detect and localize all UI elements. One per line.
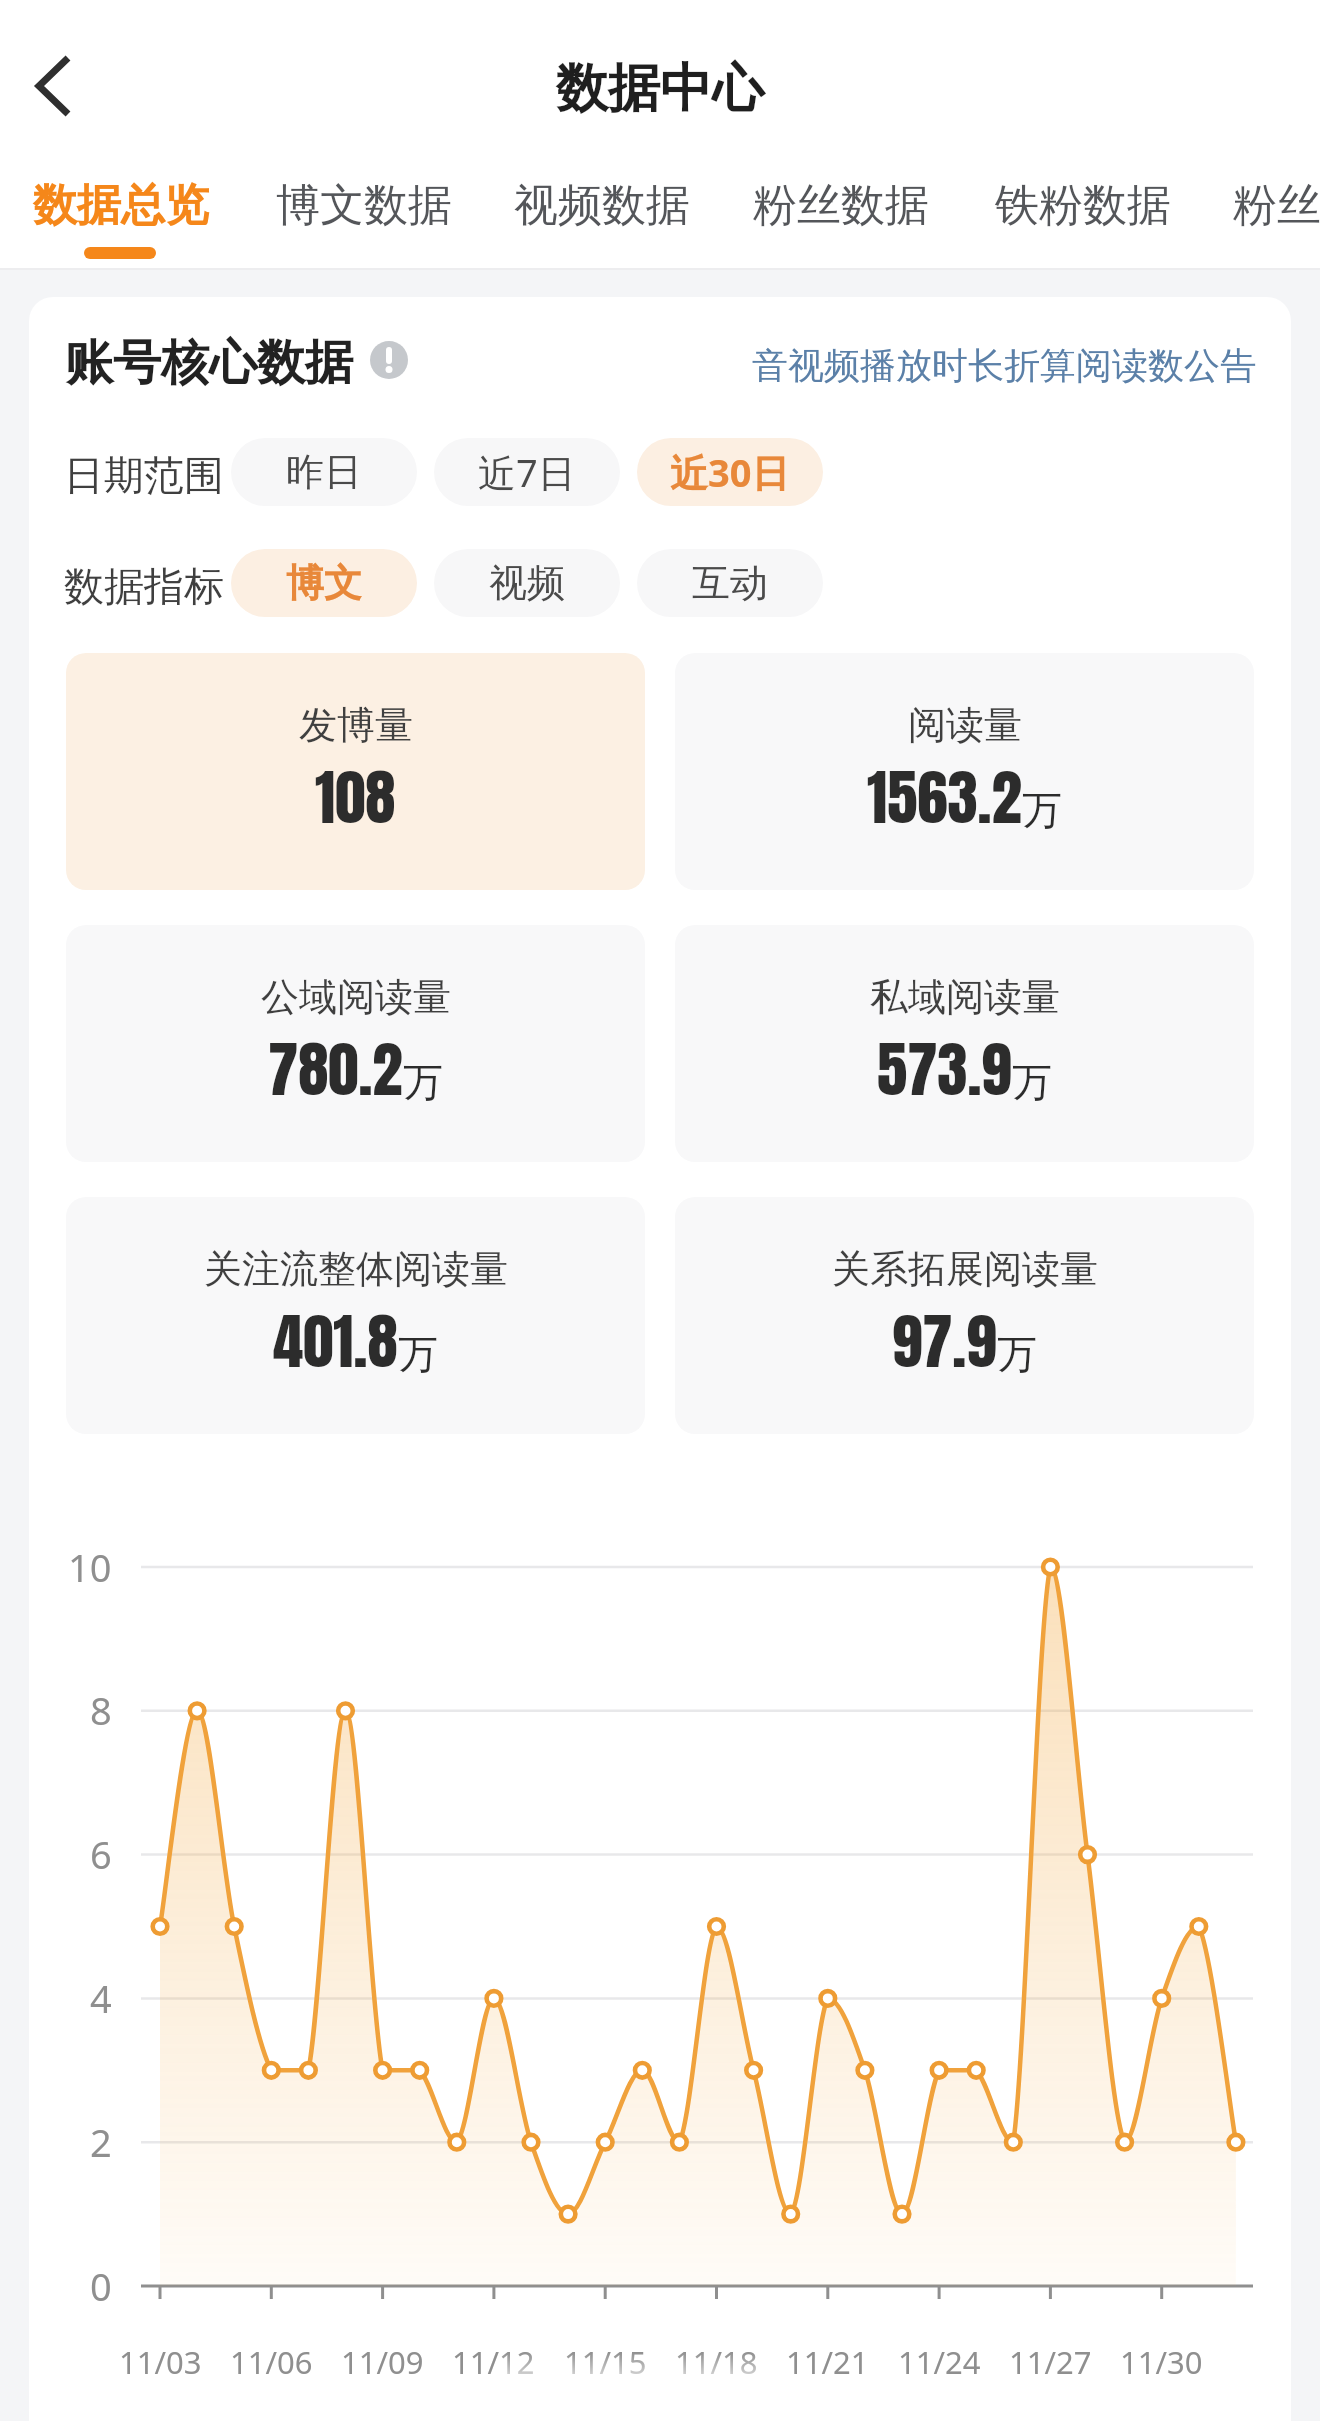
- staticText: 97.9: [892, 1295, 997, 1387]
- staticText: 11/27: [1009, 2341, 1092, 2383]
- staticText: 108: [315, 751, 396, 843]
- staticText: 11/21: [786, 2341, 869, 2383]
- staticText: 11/09: [341, 2341, 424, 2383]
- staticText: 11/03: [119, 2341, 202, 2383]
- button[interactable]: 粉丝数据: [1233, 178, 1320, 242]
- button[interactable]: [20, 45, 90, 125]
- staticText: 2: [90, 2116, 112, 2168]
- staticText: 铁粉数据: [995, 178, 1171, 233]
- staticText: 公域阅读量: [261, 973, 451, 1021]
- staticText: 近30日: [670, 446, 790, 498]
- staticText: 阅读量: [908, 701, 1022, 749]
- button[interactable]: 博文数据: [276, 178, 452, 242]
- staticText: 账号核心数据: [65, 333, 353, 393]
- staticText: 万: [403, 1057, 443, 1107]
- staticText: 数据总览: [33, 178, 209, 233]
- staticText: 11/06: [230, 2341, 313, 2383]
- button[interactable]: 关系拓展阅读量: [675, 1197, 1254, 1434]
- staticText: 关系拓展阅读量: [832, 1245, 1098, 1293]
- staticText: 音视频播放时长折算阅读数公告: [752, 343, 1256, 388]
- staticText: 万: [997, 1329, 1037, 1379]
- button[interactable]: 阅读量: [675, 653, 1254, 890]
- button[interactable]: 关注流整体阅读量: [66, 1197, 645, 1434]
- staticText: 博文: [286, 559, 362, 607]
- staticText: 0: [90, 2260, 112, 2312]
- staticText: 发博量: [299, 701, 413, 749]
- button[interactable]: 发博量: [66, 653, 645, 890]
- staticText: 万: [398, 1329, 438, 1379]
- staticText: 11/24: [898, 2341, 981, 2383]
- staticText: 数据中心: [556, 56, 764, 122]
- staticText: 万: [1022, 785, 1062, 835]
- staticText: 780.2: [268, 1023, 403, 1115]
- button[interactable]: 视频: [434, 549, 620, 617]
- staticText: 互动: [692, 559, 768, 607]
- staticText: 视频: [489, 559, 565, 607]
- staticText: 万: [1012, 1057, 1052, 1107]
- button[interactable]: 音视频播放时长折算阅读数公告: [700, 340, 1256, 390]
- button[interactable]: 近30日: [637, 438, 823, 506]
- button[interactable]: 近7日: [434, 438, 620, 506]
- staticText: 401.8: [273, 1295, 398, 1387]
- staticText: 11/18: [675, 2341, 758, 2383]
- staticText: 粉丝数据: [753, 178, 929, 233]
- staticText: 11/15: [564, 2341, 647, 2383]
- staticText: 573.9: [877, 1023, 1012, 1115]
- button[interactable]: 互动: [637, 549, 823, 617]
- button[interactable]: 博文: [231, 549, 417, 617]
- staticText: 11/30: [1120, 2341, 1203, 2383]
- staticText: 4: [90, 1972, 112, 2024]
- staticText: 视频数据: [514, 178, 690, 233]
- staticText: 1563.2: [867, 751, 1022, 843]
- button[interactable]: 私域阅读量: [675, 925, 1254, 1162]
- staticText: 近7日: [478, 446, 576, 498]
- staticText: 10: [68, 1541, 112, 1593]
- staticText: 粉丝数据: [1233, 178, 1320, 233]
- staticText: 数据指标: [64, 561, 224, 611]
- staticText: 关注流整体阅读量: [204, 1245, 508, 1293]
- button[interactable]: 数据总览: [33, 178, 209, 242]
- button[interactable]: 昨日: [231, 438, 417, 506]
- staticText: 私域阅读量: [870, 973, 1060, 1021]
- button[interactable]: 公域阅读量: [66, 925, 645, 1162]
- button[interactable]: 粉丝数据: [753, 178, 929, 242]
- staticText: 6: [90, 1828, 112, 1880]
- staticText: 博文数据: [276, 178, 452, 233]
- staticText: 昨日: [286, 448, 362, 496]
- staticText: 11/12: [452, 2341, 535, 2383]
- button[interactable]: 视频数据: [514, 178, 690, 242]
- staticText: 日期范围: [64, 450, 224, 500]
- staticText: 8: [90, 1684, 112, 1736]
- button[interactable]: 铁粉数据: [995, 178, 1171, 242]
